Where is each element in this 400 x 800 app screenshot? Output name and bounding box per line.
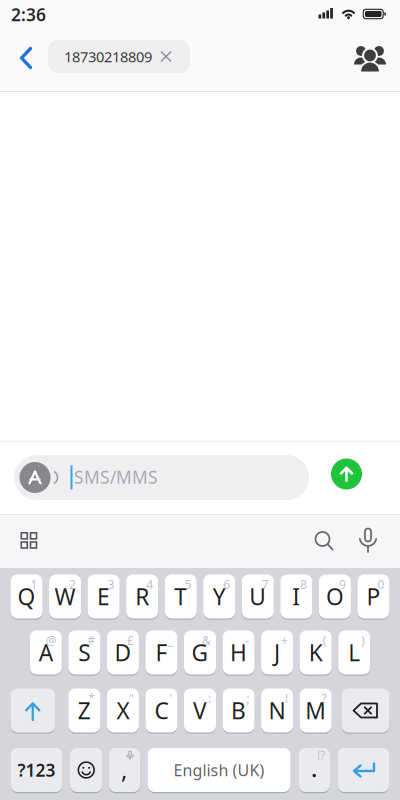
staticText: T: [174, 581, 187, 611]
button[interactable]: W: [49, 574, 81, 618]
staticText: ,: [121, 754, 127, 785]
staticText: 18730218809: [64, 47, 152, 66]
staticText: ;: [246, 690, 249, 706]
staticText: B: [231, 695, 246, 725]
button[interactable]: ?123: [10, 748, 62, 792]
staticText: (: [323, 632, 327, 648]
staticText: 1: [30, 576, 37, 592]
staticText: 2:36: [11, 3, 46, 26]
staticText: 0: [377, 576, 384, 592]
button[interactable]: [70, 748, 102, 792]
staticText: ?: [322, 690, 327, 706]
button[interactable]: R: [126, 574, 158, 618]
staticText: *: [88, 690, 95, 706]
staticText: +: [281, 632, 288, 648]
staticText: P: [366, 581, 380, 611]
button[interactable]: N: [261, 688, 293, 732]
staticText: #: [87, 632, 95, 648]
button[interactable]: O: [319, 574, 351, 618]
staticText: ': [169, 690, 172, 706]
button[interactable]: U: [242, 574, 274, 618]
staticText: E: [97, 581, 110, 611]
button[interactable]: E: [88, 574, 120, 618]
button[interactable]: Q: [10, 574, 42, 618]
button[interactable]: [354, 523, 382, 558]
button[interactable]: P: [357, 574, 389, 618]
staticText: L: [348, 637, 360, 667]
staticText: ?123: [17, 758, 55, 781]
staticText: £: [127, 632, 134, 648]
staticText: ): [361, 632, 365, 648]
staticText: -: [246, 632, 250, 648]
staticText: SMS/MMS: [74, 465, 158, 488]
button[interactable]: X: [107, 688, 139, 732]
staticText: 2: [69, 576, 76, 592]
staticText: 8: [300, 576, 307, 592]
button[interactable]: Z: [68, 688, 100, 732]
button[interactable]: A: [30, 630, 62, 674]
staticText: A: [39, 637, 53, 667]
staticText: U: [249, 581, 266, 611]
button[interactable]: [13, 40, 38, 75]
button[interactable]: ,: [109, 748, 140, 792]
button[interactable]: !?: [298, 748, 330, 792]
staticText: O: [326, 581, 344, 611]
staticText: &: [202, 632, 211, 648]
staticText: 4: [146, 576, 153, 592]
staticText: I: [292, 581, 300, 611]
staticText: :: [208, 690, 211, 706]
button[interactable]: [309, 526, 338, 555]
button[interactable]: M: [300, 688, 332, 732]
staticText: !?: [317, 747, 325, 763]
staticText: K: [309, 637, 323, 667]
staticText: M: [305, 695, 326, 725]
staticText: 5: [185, 576, 192, 592]
staticText: @: [46, 632, 57, 648]
button[interactable]: Y: [203, 574, 235, 618]
button[interactable]: C: [145, 688, 177, 732]
button[interactable]: SMS/MMS: [14, 455, 309, 500]
button[interactable]: [353, 44, 386, 72]
staticText: Y: [213, 581, 226, 611]
button[interactable]: [341, 688, 389, 732]
staticText: 9: [339, 576, 346, 592]
staticText: _: [167, 632, 172, 648]
button[interactable]: H: [223, 630, 255, 674]
button[interactable]: [10, 688, 55, 732]
button[interactable]: I: [280, 574, 312, 618]
staticText: 7: [262, 576, 269, 592]
staticText: 6: [223, 576, 230, 592]
button[interactable]: T: [165, 574, 197, 618]
staticText: English (UK): [173, 759, 264, 781]
button[interactable]: K: [300, 630, 332, 674]
staticText: H: [230, 637, 247, 667]
staticText: X: [116, 695, 129, 725]
staticText: 3: [108, 576, 115, 592]
staticText: D: [114, 637, 131, 667]
button[interactable]: English (UK): [147, 748, 290, 792]
button[interactable]: G: [184, 630, 216, 674]
staticText: G: [191, 637, 208, 667]
staticText: !: [285, 690, 288, 706]
button[interactable]: 18730218809: [48, 40, 190, 73]
staticText: S: [78, 637, 90, 667]
button[interactable]: [337, 748, 389, 792]
staticText: ": [129, 690, 134, 706]
staticText: W: [54, 581, 75, 611]
button[interactable]: B: [222, 688, 254, 732]
staticText: F: [155, 637, 167, 667]
staticText: C: [154, 695, 168, 725]
staticText: N: [269, 695, 286, 725]
staticText: V: [193, 695, 207, 725]
staticText: Q: [17, 581, 35, 611]
button[interactable]: L: [338, 630, 370, 674]
staticText: J: [274, 637, 280, 667]
staticText: Z: [78, 695, 91, 725]
button[interactable]: S: [68, 630, 100, 674]
button[interactable]: [331, 458, 362, 489]
button[interactable]: F: [145, 630, 177, 674]
button[interactable]: D: [107, 630, 139, 674]
button[interactable]: [14, 526, 43, 555]
button[interactable]: J: [261, 630, 293, 674]
button[interactable]: V: [184, 688, 216, 732]
